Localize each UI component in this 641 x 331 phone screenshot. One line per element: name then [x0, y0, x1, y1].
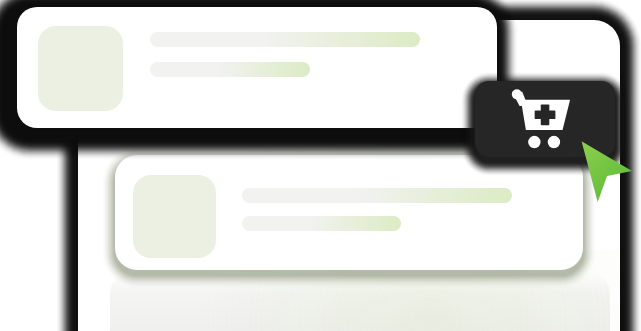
- button[interactable]: Add product to cart illustration: [0, 0, 641, 331]
